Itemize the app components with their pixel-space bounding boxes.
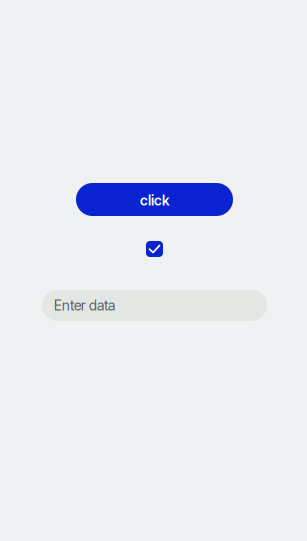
staticText: Enter data xyxy=(54,297,115,314)
button[interactable]: Checkbox, checked xyxy=(146,241,163,257)
button[interactable]: click xyxy=(76,183,233,216)
staticText: click xyxy=(140,192,169,209)
button[interactable]: Enter data xyxy=(42,290,267,321)
